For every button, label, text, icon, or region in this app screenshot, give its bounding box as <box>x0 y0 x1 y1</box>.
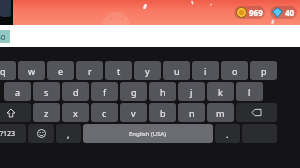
staticText: t <box>117 65 121 77</box>
staticText: d <box>73 86 79 98</box>
staticText: . <box>226 128 229 140</box>
staticText: z <box>44 107 49 119</box>
staticText: o <box>232 65 238 77</box>
button[interactable]: i <box>192 61 219 80</box>
button[interactable]: q <box>0 61 16 80</box>
button[interactable]: w <box>18 61 45 80</box>
button[interactable]: j <box>178 82 205 101</box>
staticText: y <box>145 65 150 77</box>
staticText: h <box>160 86 166 98</box>
button[interactable]: d <box>62 82 89 101</box>
button[interactable]: a <box>4 82 31 101</box>
staticText: u <box>174 65 180 77</box>
staticText: j <box>190 86 193 98</box>
button[interactable]: Emoji <box>28 124 54 143</box>
staticText: k <box>218 86 223 98</box>
button[interactable]: ?123 <box>0 124 26 143</box>
button[interactable]: u <box>163 61 190 80</box>
staticText: i <box>204 65 207 77</box>
button[interactable]: x <box>62 103 89 122</box>
staticText: a <box>15 86 21 98</box>
staticText: 40 <box>285 7 295 18</box>
button[interactable]: Menu <box>0 0 11 17</box>
staticText: b <box>160 107 166 119</box>
button[interactable]: c <box>91 103 118 122</box>
button[interactable]: Backspace <box>236 103 277 122</box>
staticText: , <box>67 128 70 140</box>
button[interactable]: 40 <box>270 6 297 19</box>
staticText: ?123 <box>0 129 16 139</box>
button[interactable]: e <box>47 61 74 80</box>
button[interactable]: 969 <box>234 6 265 19</box>
button[interactable]: l <box>236 82 263 101</box>
button[interactable]: b <box>149 103 176 122</box>
staticText: q <box>0 65 6 77</box>
staticText: l <box>248 86 251 98</box>
button[interactable]: m <box>207 103 234 122</box>
button[interactable]: . <box>215 124 240 143</box>
button[interactable]: English (USA) <box>83 124 213 143</box>
staticText: n <box>189 107 195 119</box>
staticText: x <box>73 107 78 119</box>
button[interactable]: Shift <box>0 103 31 122</box>
button[interactable]: p <box>250 61 277 80</box>
button[interactable]: v <box>120 103 147 122</box>
button[interactable]: r <box>76 61 103 80</box>
button[interactable]: h <box>149 82 176 101</box>
staticText: English (USA) <box>129 130 167 138</box>
staticText: g <box>131 86 137 98</box>
staticText: 969 <box>249 7 263 18</box>
button[interactable]: n <box>178 103 205 122</box>
staticText: p <box>261 65 267 77</box>
button[interactable]: z <box>33 103 60 122</box>
staticText: r <box>88 65 92 77</box>
button[interactable]: so <box>0 30 10 43</box>
staticText: f <box>103 86 107 98</box>
staticText: e <box>58 65 64 77</box>
staticText: m <box>216 107 225 119</box>
button[interactable]: s <box>33 82 60 101</box>
staticText: s <box>44 86 49 98</box>
button[interactable]: , <box>56 124 81 143</box>
button[interactable]: o <box>221 61 248 80</box>
staticText: v <box>131 107 136 119</box>
button[interactable]: t <box>105 61 132 80</box>
staticText: c <box>102 107 107 119</box>
staticText: w <box>28 65 36 77</box>
button[interactable]: f <box>91 82 118 101</box>
button[interactable]: k <box>207 82 234 101</box>
button[interactable]: y <box>134 61 161 80</box>
staticText: so <box>0 31 6 42</box>
button[interactable]: g <box>120 82 147 101</box>
